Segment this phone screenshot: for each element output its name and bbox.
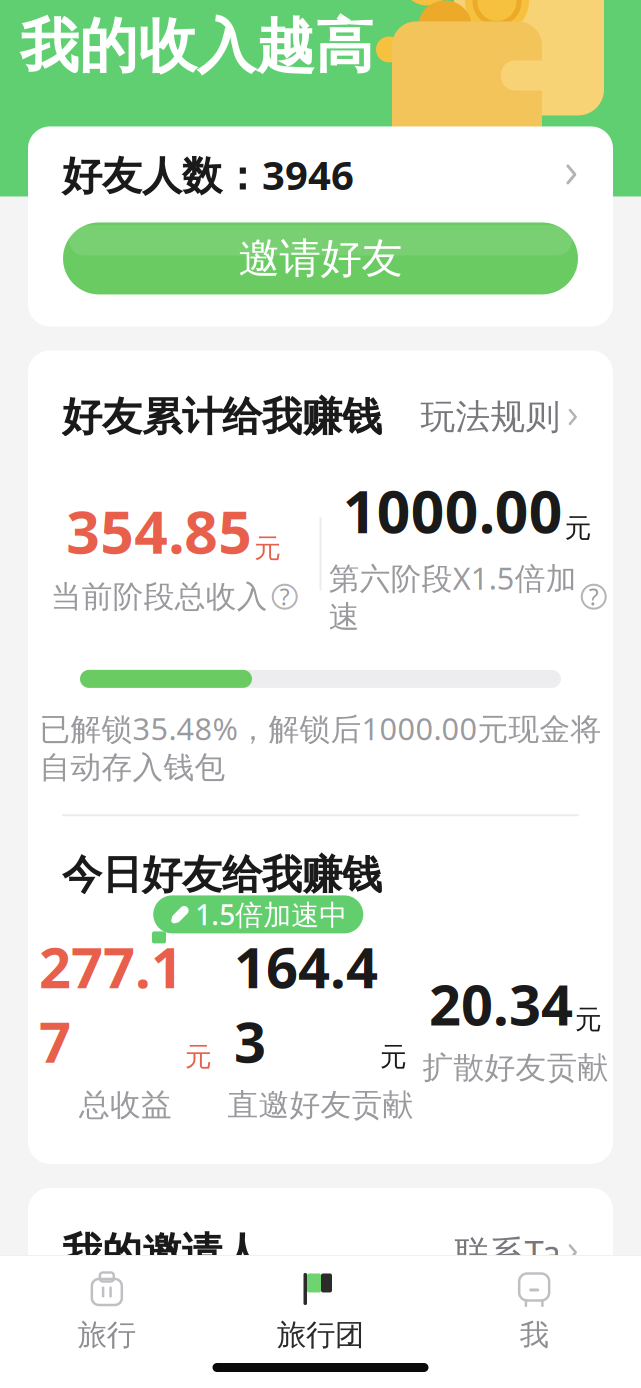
staticText: 我的邀请人: [62, 1228, 262, 1277]
staticText: ?: [589, 582, 599, 612]
staticText: 直邀好友贡献: [227, 1086, 413, 1124]
staticText: 元: [565, 512, 592, 544]
staticText: 164.43: [234, 929, 378, 1078]
button[interactable]: 旅行团: [214, 1269, 427, 1353]
staticText: 联系Ta: [454, 1229, 560, 1275]
staticText: 今日好友给我赚钱: [62, 850, 382, 899]
button[interactable]: 好友人数：3946: [28, 126, 613, 222]
staticText: 我: [520, 1317, 549, 1353]
staticText: 我的收入越高: [20, 10, 374, 82]
button[interactable]: 联系Ta: [454, 1229, 579, 1275]
button[interactable]: 旅行: [0, 1269, 214, 1353]
button[interactable]: 邀请好友: [63, 222, 578, 294]
staticText: 277.17: [39, 929, 183, 1078]
staticText: 扩散好友贡献: [422, 1049, 608, 1087]
button[interactable]: 玩法规则: [420, 396, 579, 438]
staticText: 旅行团: [277, 1317, 364, 1353]
staticText: 元: [380, 1040, 407, 1073]
staticText: 20.34: [429, 967, 573, 1041]
staticText: 354.85: [66, 492, 252, 570]
staticText: 他邀请了6人，今日收益: [169, 1305, 434, 1388]
staticText: 第六阶段X1.5倍加速: [329, 557, 577, 636]
staticText: 1000.00: [343, 472, 563, 549]
staticText: 当前阶段总收入: [51, 578, 268, 615]
staticText: ?: [280, 582, 290, 612]
button[interactable]: 我: [427, 1269, 641, 1353]
staticText: 好友人数：3946: [62, 148, 354, 201]
staticText: 元: [254, 532, 281, 565]
staticText: 100.71元: [434, 1326, 579, 1372]
staticText: 总收益: [79, 1086, 172, 1124]
staticText: 元: [575, 1003, 602, 1036]
staticText: 已解锁35.48%，解锁后1000.00元现金将自动存入钱包: [39, 708, 601, 786]
staticText: 好友累计给我赚钱: [62, 392, 382, 441]
staticText: 元: [185, 1040, 212, 1073]
staticText: 邀请好友: [238, 233, 402, 284]
staticText: 旅行: [78, 1317, 136, 1353]
staticText: 玩法规则: [420, 396, 560, 438]
staticText: 1.5倍加速中: [195, 896, 347, 933]
